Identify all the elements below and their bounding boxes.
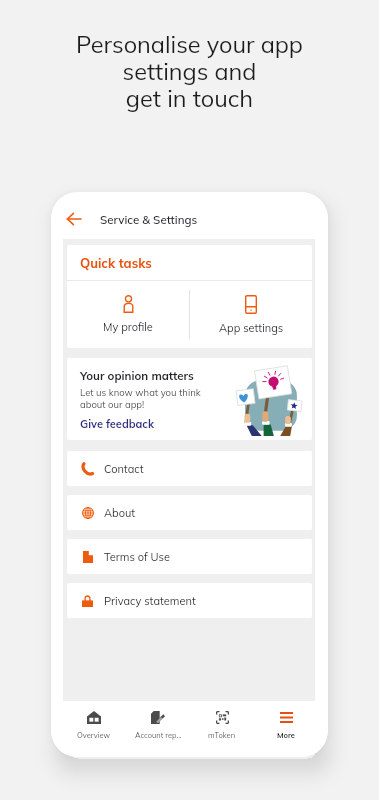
button[interactable]: mToken <box>190 701 254 749</box>
button[interactable]: Account rep... <box>126 701 190 749</box>
button[interactable]: My profile <box>67 281 189 348</box>
button[interactable]: Contact <box>67 451 312 486</box>
staticText: Personalise your app settings and get in… <box>0 29 379 112</box>
staticText: Account rep... <box>135 730 182 739</box>
staticText: My profile <box>103 320 153 334</box>
staticText: Quick tasks <box>80 255 152 271</box>
staticText: Service & Settings <box>100 212 198 226</box>
staticText: mToken <box>208 730 236 739</box>
button[interactable]: Give feedback <box>80 417 154 431</box>
button[interactable]: About <box>67 495 312 530</box>
button[interactable]: Back <box>64 209 84 229</box>
staticText: More <box>277 730 295 739</box>
button[interactable]: Terms of Use <box>67 539 312 574</box>
staticText: Overview <box>77 730 111 739</box>
staticText: App settings <box>219 321 284 335</box>
staticText: Your opinion matters <box>80 368 194 382</box>
staticText: Let us know what you think about our app… <box>80 386 201 410</box>
staticText: Privacy statement <box>104 594 196 608</box>
staticText: Contact <box>104 462 144 476</box>
button[interactable]: Privacy statement <box>67 583 312 618</box>
staticText: Terms of Use <box>104 550 171 564</box>
button[interactable]: App settings <box>190 281 312 348</box>
staticText: About <box>104 506 136 520</box>
button[interactable]: More <box>254 701 318 749</box>
button[interactable]: Overview <box>62 701 126 749</box>
